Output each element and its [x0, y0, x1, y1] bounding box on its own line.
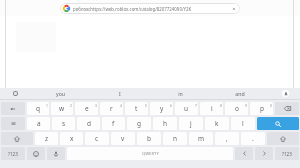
button[interactable]: c [85, 132, 109, 145]
button[interactable]: i [200, 102, 223, 115]
staticText: d [87, 119, 91, 128]
staticText: . [252, 134, 254, 143]
button[interactable]: ?123 [1, 147, 25, 160]
staticText: c [95, 134, 99, 143]
staticText: j [190, 119, 192, 128]
staticText: and [235, 90, 245, 97]
staticText: 8 [220, 103, 222, 108]
staticText: v [121, 134, 125, 143]
staticText: 9 [245, 103, 247, 108]
button[interactable]: . [241, 132, 265, 145]
staticText: h [163, 119, 168, 128]
button[interactable]: Tab [1, 102, 25, 115]
staticText: a [37, 119, 41, 128]
staticText: ?123 [8, 151, 18, 157]
button[interactable]: f [102, 117, 125, 130]
button[interactable]: q [27, 102, 49, 115]
button[interactable]: Previous [235, 147, 253, 160]
button[interactable]: Clear [230, 5, 237, 12]
staticText: f [112, 119, 115, 128]
staticText: z [45, 134, 49, 143]
staticText: u [184, 104, 189, 113]
staticText: k [215, 119, 219, 128]
button[interactable]: a [27, 117, 50, 130]
staticText: you [56, 90, 65, 97]
button[interactable]: Clipboard [0, 88, 30, 99]
button[interactable]: b [137, 132, 161, 145]
button[interactable]: Backspace [275, 102, 299, 115]
button[interactable]: t [125, 102, 148, 115]
button[interactable]: k [205, 117, 229, 130]
button[interactable]: you [30, 88, 90, 99]
button[interactable]: Shift [1, 132, 33, 145]
button[interactable]: Search [257, 117, 299, 130]
staticText: 6 [170, 103, 172, 108]
button[interactable]: z [35, 132, 58, 145]
staticText: e [85, 104, 89, 113]
staticText: роблохсhttps://web.roblox.com/catalog/82… [73, 6, 228, 12]
button[interactable]: v [111, 132, 135, 145]
button[interactable]: j [179, 117, 203, 130]
button[interactable]: o [225, 102, 248, 115]
button[interactable]: e [75, 102, 98, 115]
button[interactable]: w [51, 102, 73, 115]
staticText: o [235, 104, 239, 113]
button[interactable]: I [90, 88, 150, 99]
button[interactable]: роблохсhttps://web.roblox.com/catalog/82… [60, 3, 240, 14]
button[interactable]: l [231, 117, 255, 130]
button[interactable]: Caps lock [1, 117, 25, 130]
button[interactable]: x [60, 132, 83, 145]
staticText: q [36, 104, 40, 113]
button[interactable]: h [153, 117, 177, 130]
button[interactable]: r [100, 102, 123, 115]
button[interactable]: ?123 [275, 147, 299, 160]
button[interactable]: Voice input [47, 147, 65, 160]
staticText: b [147, 134, 151, 143]
staticText: i [211, 104, 213, 113]
button[interactable]: QWERTY [67, 147, 233, 160]
staticText: in [178, 90, 183, 97]
staticText: x [70, 134, 74, 143]
staticText: ?123 [282, 151, 292, 157]
staticText: l [242, 119, 244, 128]
button[interactable]: s [52, 117, 75, 130]
staticText: 1 [46, 103, 48, 108]
staticText: 0 [270, 103, 272, 108]
button[interactable]: More suggestions [270, 88, 300, 99]
staticText: 5 [145, 103, 147, 108]
button[interactable]: , [215, 132, 239, 145]
staticText: p [260, 104, 264, 113]
staticText: , [226, 134, 228, 143]
staticText: I [119, 90, 121, 97]
staticText: 4 [120, 103, 122, 108]
staticText: 7 [195, 103, 197, 108]
button[interactable]: n [163, 132, 187, 145]
staticText: QWERTY [142, 151, 159, 157]
button[interactable]: m [189, 132, 213, 145]
staticText: s [62, 119, 66, 128]
staticText: m [198, 134, 205, 143]
button[interactable]: p [250, 102, 273, 115]
staticText: r [110, 104, 113, 113]
staticText: 3 [95, 103, 97, 108]
staticText: n [173, 134, 178, 143]
button[interactable]: Shift [267, 132, 299, 145]
staticText: 2 [70, 103, 72, 108]
button[interactable]: Emoji [27, 147, 45, 160]
staticText: w [59, 104, 65, 113]
button[interactable]: d [77, 117, 100, 130]
button[interactable]: in [150, 88, 210, 99]
button[interactable]: u [175, 102, 198, 115]
button[interactable]: Next [255, 147, 273, 160]
staticText: t [135, 104, 138, 113]
button[interactable]: y [150, 102, 173, 115]
staticText: y [160, 104, 164, 113]
button[interactable]: g [127, 117, 151, 130]
staticText: g [137, 119, 141, 128]
button[interactable]: and [210, 88, 270, 99]
